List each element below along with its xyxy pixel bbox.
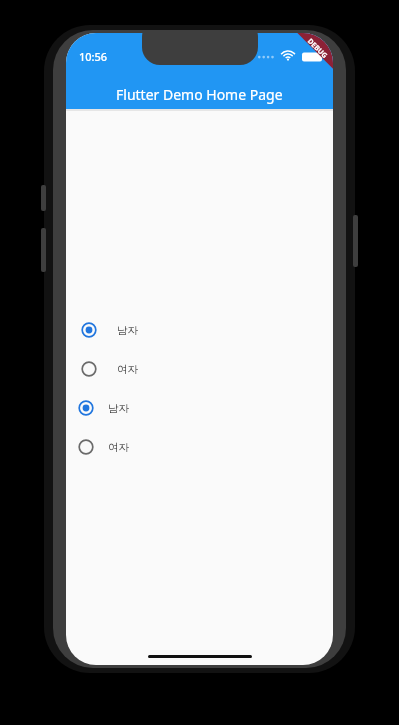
button[interactable]: 여자 [71, 432, 129, 462]
staticText: 남자 [117, 324, 138, 337]
staticText: Flutter Demo Home Page [116, 85, 283, 104]
button[interactable]: 남자 [74, 315, 138, 345]
staticText: DEBUG [305, 37, 330, 61]
staticText: 남자 [108, 402, 129, 415]
staticText: 10:56 [79, 49, 108, 64]
staticText: 여자 [117, 363, 138, 376]
staticText: 여자 [108, 441, 129, 454]
button[interactable]: 남자 [71, 393, 129, 423]
button[interactable]: 여자 [74, 354, 138, 384]
